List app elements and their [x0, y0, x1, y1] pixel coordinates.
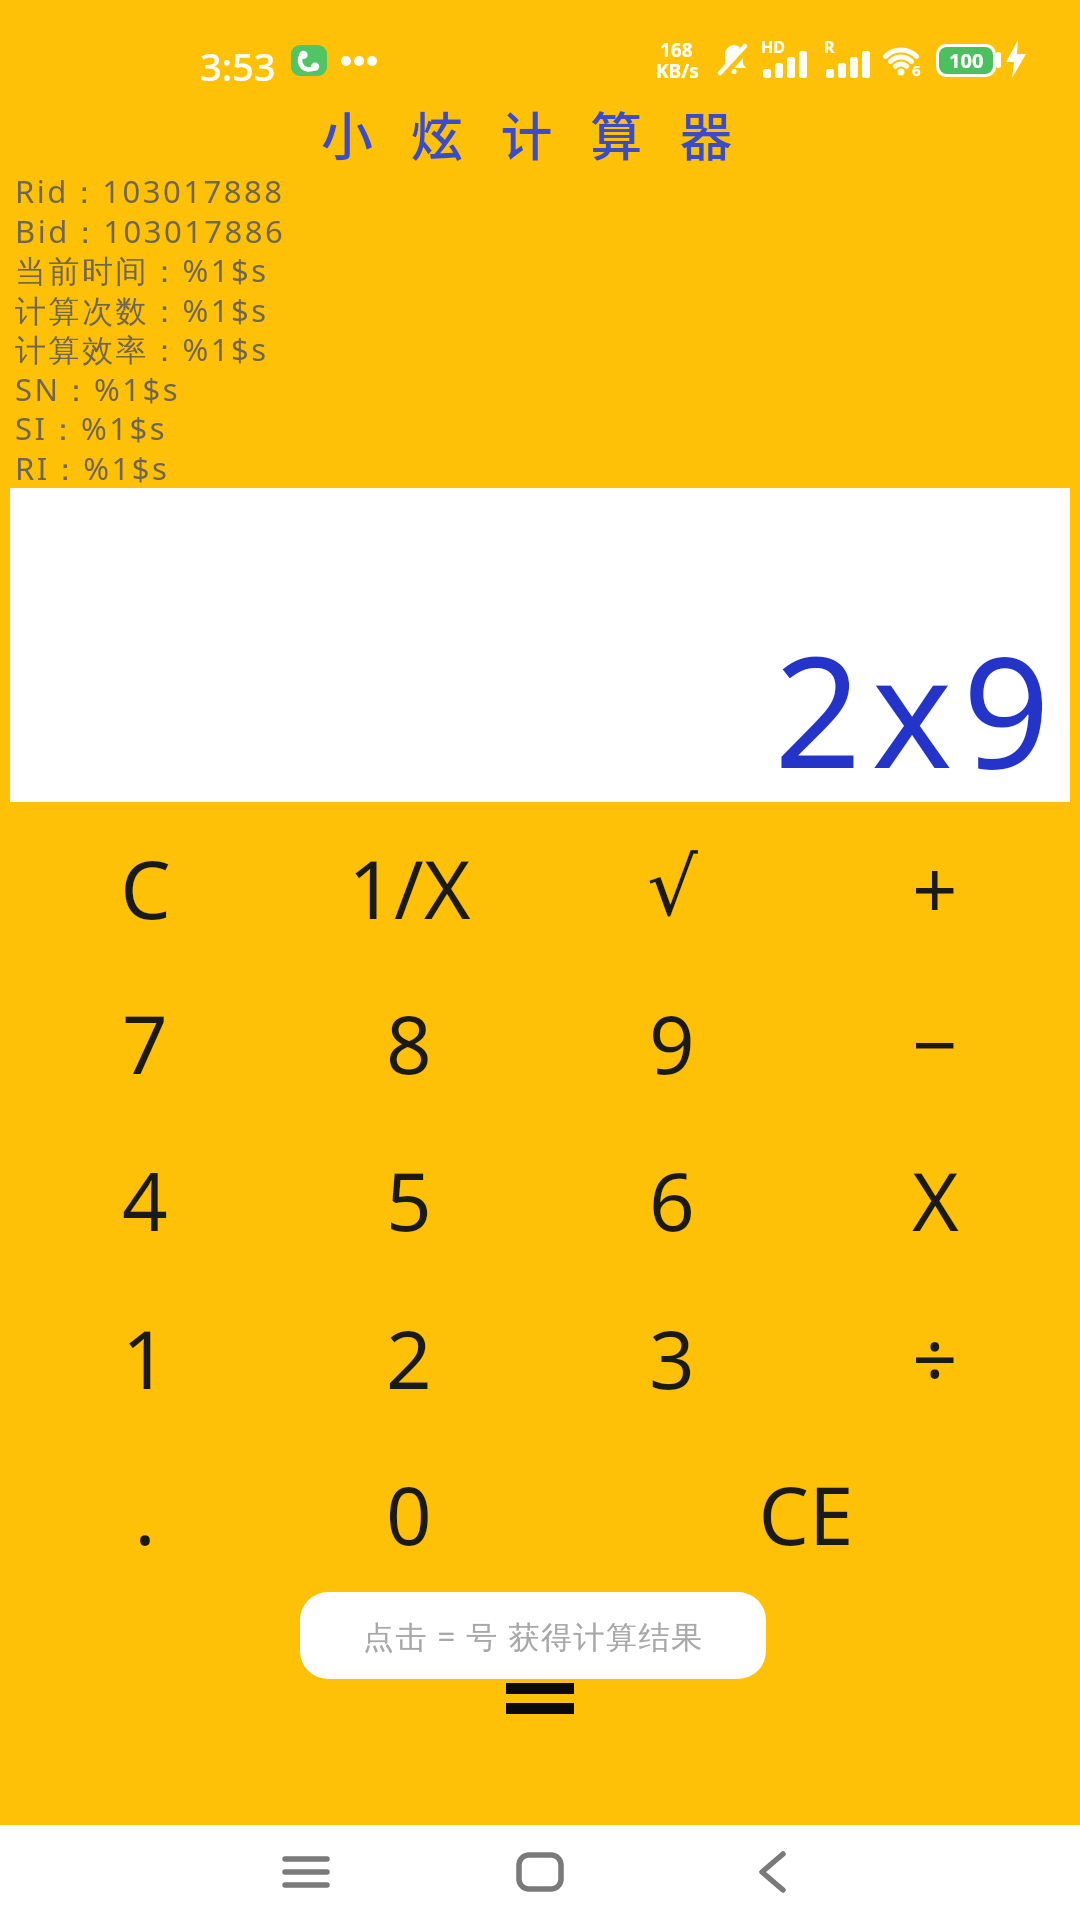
staticText: 168	[660, 37, 693, 63]
staticText: 点击 = 号 获得计算结果	[363, 1615, 704, 1657]
staticText: HD	[761, 36, 785, 58]
staticText: √	[647, 841, 698, 934]
staticText: 5	[386, 1145, 432, 1254]
staticText: 100	[949, 47, 984, 74]
staticText: SI：%1$s	[15, 407, 168, 449]
staticText: RI：%1$s	[15, 447, 170, 489]
staticText: 计算次数：%1$s	[15, 289, 269, 331]
staticText: CE	[758, 1459, 854, 1568]
staticText: 1	[122, 1303, 168, 1412]
staticText: 3	[649, 1303, 695, 1412]
staticText: 6	[649, 1145, 695, 1254]
staticText: Rid：103017888	[15, 170, 285, 212]
staticText: R	[824, 36, 835, 58]
staticText: 7	[122, 988, 168, 1097]
staticText: 1/X	[348, 833, 471, 942]
staticText: C	[120, 833, 171, 942]
staticText: ÷	[912, 1303, 958, 1412]
staticText: Bid：103017886	[15, 210, 286, 252]
staticText: 小 炫 计 算 器	[0, 96, 1073, 171]
staticText: 4	[122, 1145, 168, 1254]
staticText: 3:53	[200, 40, 276, 92]
staticText: 8	[386, 988, 432, 1097]
staticText: X	[912, 1145, 959, 1254]
staticText: 2	[386, 1303, 432, 1412]
staticText: −	[912, 988, 958, 1097]
staticText: 2x9	[774, 604, 1060, 812]
staticText: 当前时间：%1$s	[15, 249, 269, 291]
staticText: KB/s	[656, 58, 699, 84]
staticText: 6	[912, 60, 921, 80]
staticText: 9	[649, 988, 695, 1097]
staticText: 计算效率：%1$s	[15, 328, 269, 370]
staticText: 0	[386, 1459, 432, 1568]
staticText: +	[912, 833, 958, 942]
staticText: SN：%1$s	[15, 368, 181, 410]
staticText: .	[134, 1459, 156, 1568]
